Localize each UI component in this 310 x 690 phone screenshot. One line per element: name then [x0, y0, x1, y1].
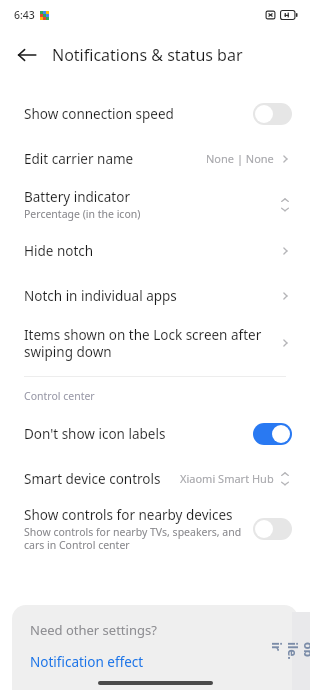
button[interactable]: Smart device controls [0, 456, 310, 501]
staticText: Hide notch [24, 242, 94, 260]
button[interactable]: Battery indicator [0, 181, 310, 228]
button[interactable]: Items shown on the Lock screen after swi… [0, 318, 310, 368]
staticText: Show connection speed [24, 105, 174, 123]
button[interactable]: Show connection speed [0, 91, 310, 136]
staticText: Items shown on the Lock screen after swi… [24, 326, 278, 361]
button[interactable]: Hide notch [0, 228, 310, 273]
button[interactable] [253, 423, 292, 445]
staticText: Show controls for nearby TVs, speakers, … [24, 525, 253, 552]
button[interactable] [253, 518, 292, 540]
staticText: 6:43 [14, 8, 35, 22]
button[interactable]: Notification effect [30, 653, 144, 671]
staticText: Don't show icon labels [24, 425, 166, 443]
staticText: Xiaomi Smart Hub [180, 471, 274, 486]
button[interactable]: Don't show icon labels [0, 411, 310, 456]
button[interactable] [253, 103, 292, 125]
staticText: Control center [24, 389, 95, 403]
staticText: Edit carrier name [24, 150, 134, 168]
staticText: Need other settings? [30, 621, 157, 639]
button[interactable]: Show controls for nearby devices [0, 501, 310, 557]
staticText: mobile.ir [269, 642, 310, 660]
staticText: Notch in individual apps [24, 287, 177, 305]
staticText: Percentage (in the icon) [24, 207, 141, 221]
button[interactable]: Edit carrier name [0, 136, 310, 181]
staticText: None | None [206, 151, 274, 166]
staticText: Battery indicator [24, 188, 130, 206]
button[interactable]: Back [10, 38, 44, 72]
button[interactable]: Notch in individual apps [0, 273, 310, 318]
staticText: Notifications & status bar [52, 44, 243, 66]
staticText: Smart device controls [24, 470, 161, 488]
staticText: Show controls for nearby devices [24, 506, 233, 524]
staticText: Notification effect [30, 653, 144, 671]
